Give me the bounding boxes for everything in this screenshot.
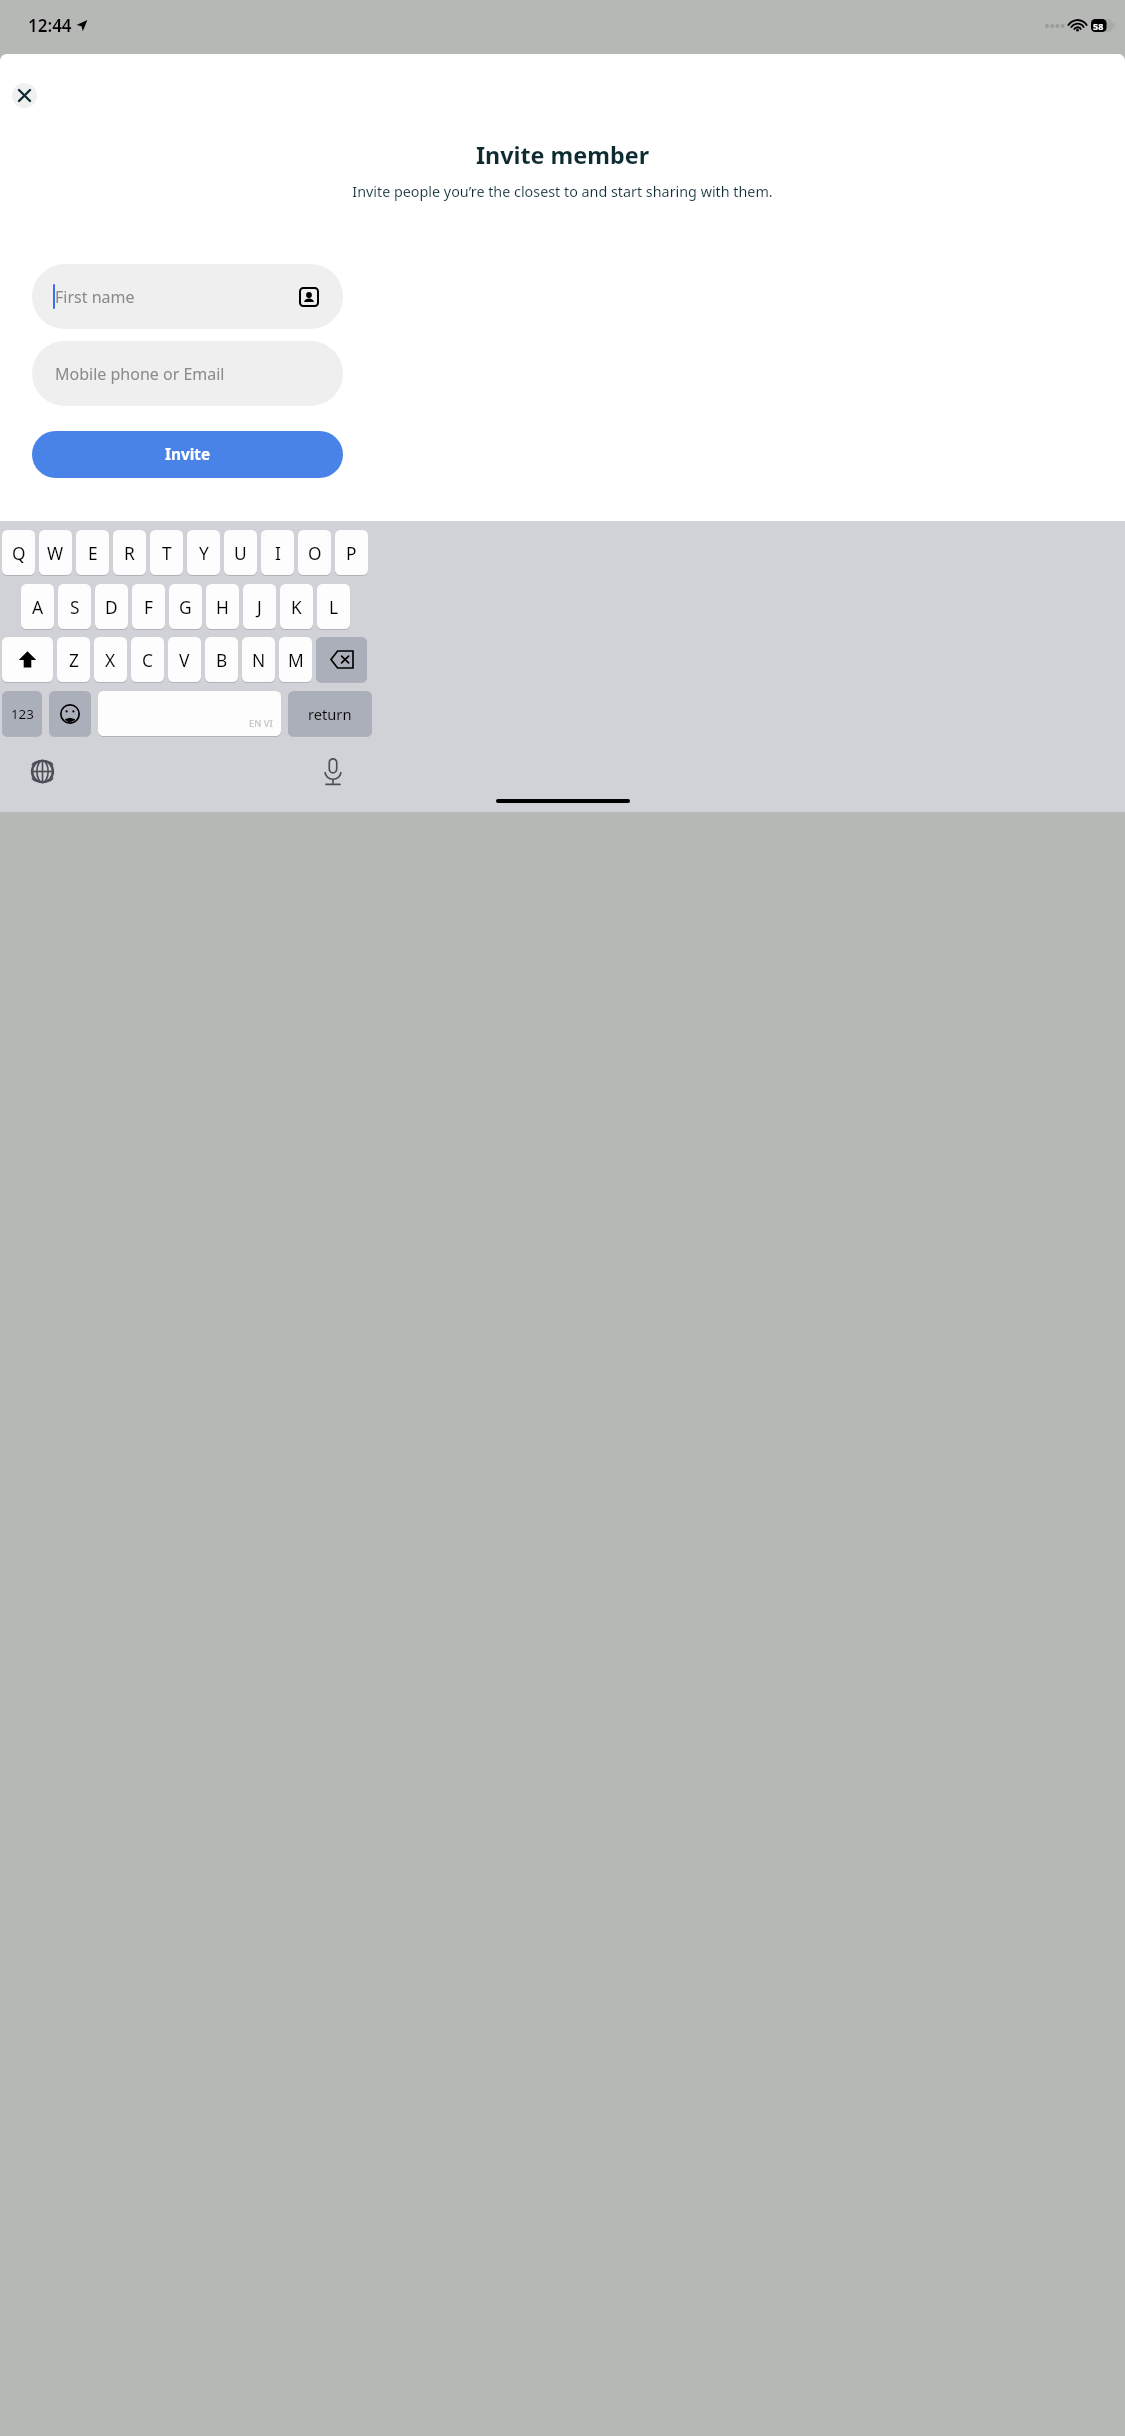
button[interactable]: Z [57, 637, 90, 682]
staticText: G [179, 595, 192, 619]
staticText: M [288, 648, 304, 672]
button[interactable]: F [132, 584, 165, 629]
button[interactable]: 123 [2, 691, 42, 736]
staticText: Mobile phone or Email [55, 363, 225, 385]
staticText: 12:44 [28, 14, 72, 37]
staticText: N [252, 648, 266, 672]
button[interactable]: K [280, 584, 313, 629]
button[interactable]: L [317, 584, 350, 629]
staticText: P [346, 541, 357, 565]
button[interactable]: Emoji [49, 691, 91, 736]
button[interactable]: Choose contact [297, 285, 320, 308]
button[interactable]: Close [12, 83, 37, 108]
staticText: S [70, 595, 80, 619]
button[interactable]: Dictate [322, 758, 344, 786]
staticText: A [32, 595, 44, 619]
staticText: Invite people you’re the closest to and … [26, 182, 1099, 202]
button[interactable]: E [76, 530, 109, 575]
staticText: C [142, 648, 153, 672]
staticText: V [179, 648, 190, 672]
button[interactable]: Mobile phone or Email [32, 341, 343, 406]
button[interactable]: U [224, 530, 257, 575]
staticText: B [216, 648, 228, 672]
button[interactable]: S [58, 584, 91, 629]
button[interactable]: Change keyboard [30, 759, 55, 784]
button[interactable]: Space [98, 691, 281, 736]
button[interactable]: B [205, 637, 238, 682]
staticText: First name [55, 286, 135, 308]
staticText: U [234, 541, 247, 565]
staticText: R [124, 541, 135, 565]
button[interactable]: Q [2, 530, 35, 575]
staticText: I [275, 541, 281, 565]
staticText: Y [199, 541, 209, 565]
staticText: T [162, 541, 172, 565]
staticText: L [329, 595, 339, 619]
button[interactable]: I [261, 530, 294, 575]
staticText: Invite [165, 444, 211, 465]
button[interactable]: D [95, 584, 128, 629]
button[interactable]: T [150, 530, 183, 575]
button[interactable]: G [169, 584, 202, 629]
button[interactable]: W [39, 530, 72, 575]
button[interactable]: M [279, 637, 312, 682]
staticText: W [47, 541, 64, 565]
button[interactable]: Y [187, 530, 220, 575]
button[interactable]: V [168, 637, 201, 682]
button[interactable]: Backspace [316, 637, 367, 682]
staticText: Q [12, 541, 26, 565]
staticText: 123 [11, 705, 34, 723]
button[interactable]: H [206, 584, 239, 629]
button[interactable]: A [21, 584, 54, 629]
staticText: J [257, 595, 262, 619]
staticText: H [216, 595, 229, 619]
staticText: return [308, 704, 352, 724]
button[interactable]: return [288, 691, 372, 736]
button[interactable]: R [113, 530, 146, 575]
staticText: E [88, 541, 98, 565]
button[interactable]: C [131, 637, 164, 682]
staticText: EN VI [249, 717, 273, 730]
button[interactable]: J [243, 584, 276, 629]
button[interactable]: Shift [2, 637, 53, 682]
staticText: O [308, 541, 322, 565]
button[interactable]: N [242, 637, 275, 682]
staticText: K [291, 595, 302, 619]
staticText: X [105, 648, 116, 672]
staticText: F [144, 595, 153, 619]
staticText: 58 [1093, 20, 1104, 32]
button[interactable]: Invite [32, 431, 343, 478]
button[interactable]: First name [32, 264, 343, 329]
button[interactable]: X [94, 637, 127, 682]
staticText: Invite member [0, 139, 1125, 171]
staticText: Z [69, 648, 79, 672]
staticText: D [105, 595, 118, 619]
button[interactable]: O [298, 530, 331, 575]
button[interactable]: P [335, 530, 368, 575]
